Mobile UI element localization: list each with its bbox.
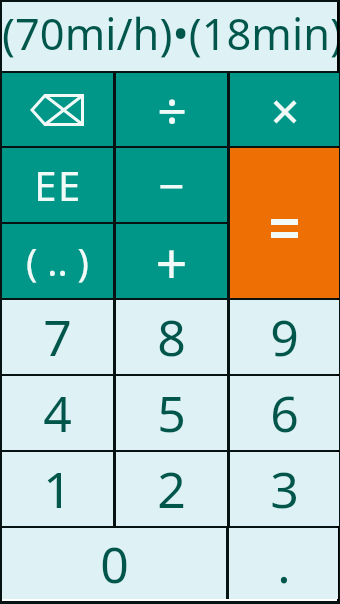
staticText: EE — [34, 158, 82, 212]
staticText: (70mi/h)•(18min) — [2, 4, 337, 63]
staticText: . — [277, 530, 291, 598]
staticText: 5 — [157, 379, 186, 447]
staticText: 6 — [270, 379, 299, 447]
staticText: ( .. ) — [26, 235, 89, 287]
staticText: 4 — [43, 379, 72, 447]
staticText: 7 — [43, 303, 72, 371]
staticText: × — [270, 75, 300, 144]
staticText: 9 — [270, 303, 299, 371]
staticText: + — [155, 224, 188, 298]
staticText: 3 — [270, 455, 299, 523]
staticText: − — [158, 154, 185, 217]
staticText: 8 — [157, 303, 186, 371]
staticText: 0 — [100, 530, 129, 598]
staticText: 2 — [157, 455, 186, 523]
staticText: ÷ — [157, 74, 187, 145]
staticText: 1 — [43, 455, 72, 523]
